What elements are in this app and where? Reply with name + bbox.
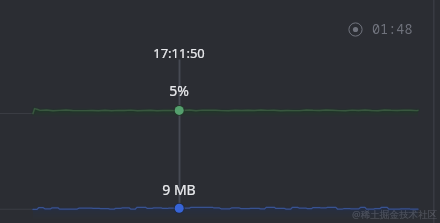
staticText: 9 MB xyxy=(119,180,239,223)
button[interactable]: Recording timer 01:48 xyxy=(348,20,413,38)
staticText: @稀土掘金技术社区 xyxy=(352,208,438,221)
staticText: 5% xyxy=(119,81,239,223)
staticText: 01:48 xyxy=(372,20,413,38)
staticText: 17:11:50 xyxy=(119,44,239,223)
